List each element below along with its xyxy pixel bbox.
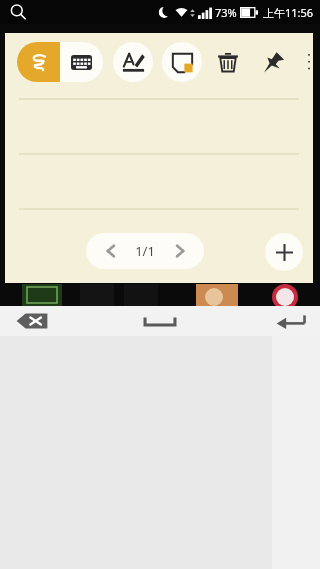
staticText: 上午11:56	[263, 5, 314, 20]
button[interactable]: Keyboard	[60, 42, 103, 82]
other: Previous page	[103, 243, 119, 259]
button[interactable]: Pin	[257, 45, 291, 79]
other: Next page	[172, 243, 188, 259]
button[interactable]: Handwriting	[17, 42, 60, 82]
button[interactable]: Enter	[276, 311, 306, 331]
button[interactable]: Pen settings	[113, 42, 153, 82]
staticText: 73%	[215, 5, 237, 20]
button[interactable]: Insert shape	[162, 42, 202, 82]
button[interactable]: Previous page	[86, 233, 204, 269]
button[interactable]: Delete	[211, 45, 245, 79]
button[interactable]: More options	[305, 45, 313, 79]
button[interactable]: Backspace	[16, 311, 48, 331]
staticText: 1/1	[135, 242, 155, 260]
button[interactable]: Add page	[265, 233, 303, 271]
button[interactable]: Space	[143, 312, 177, 330]
